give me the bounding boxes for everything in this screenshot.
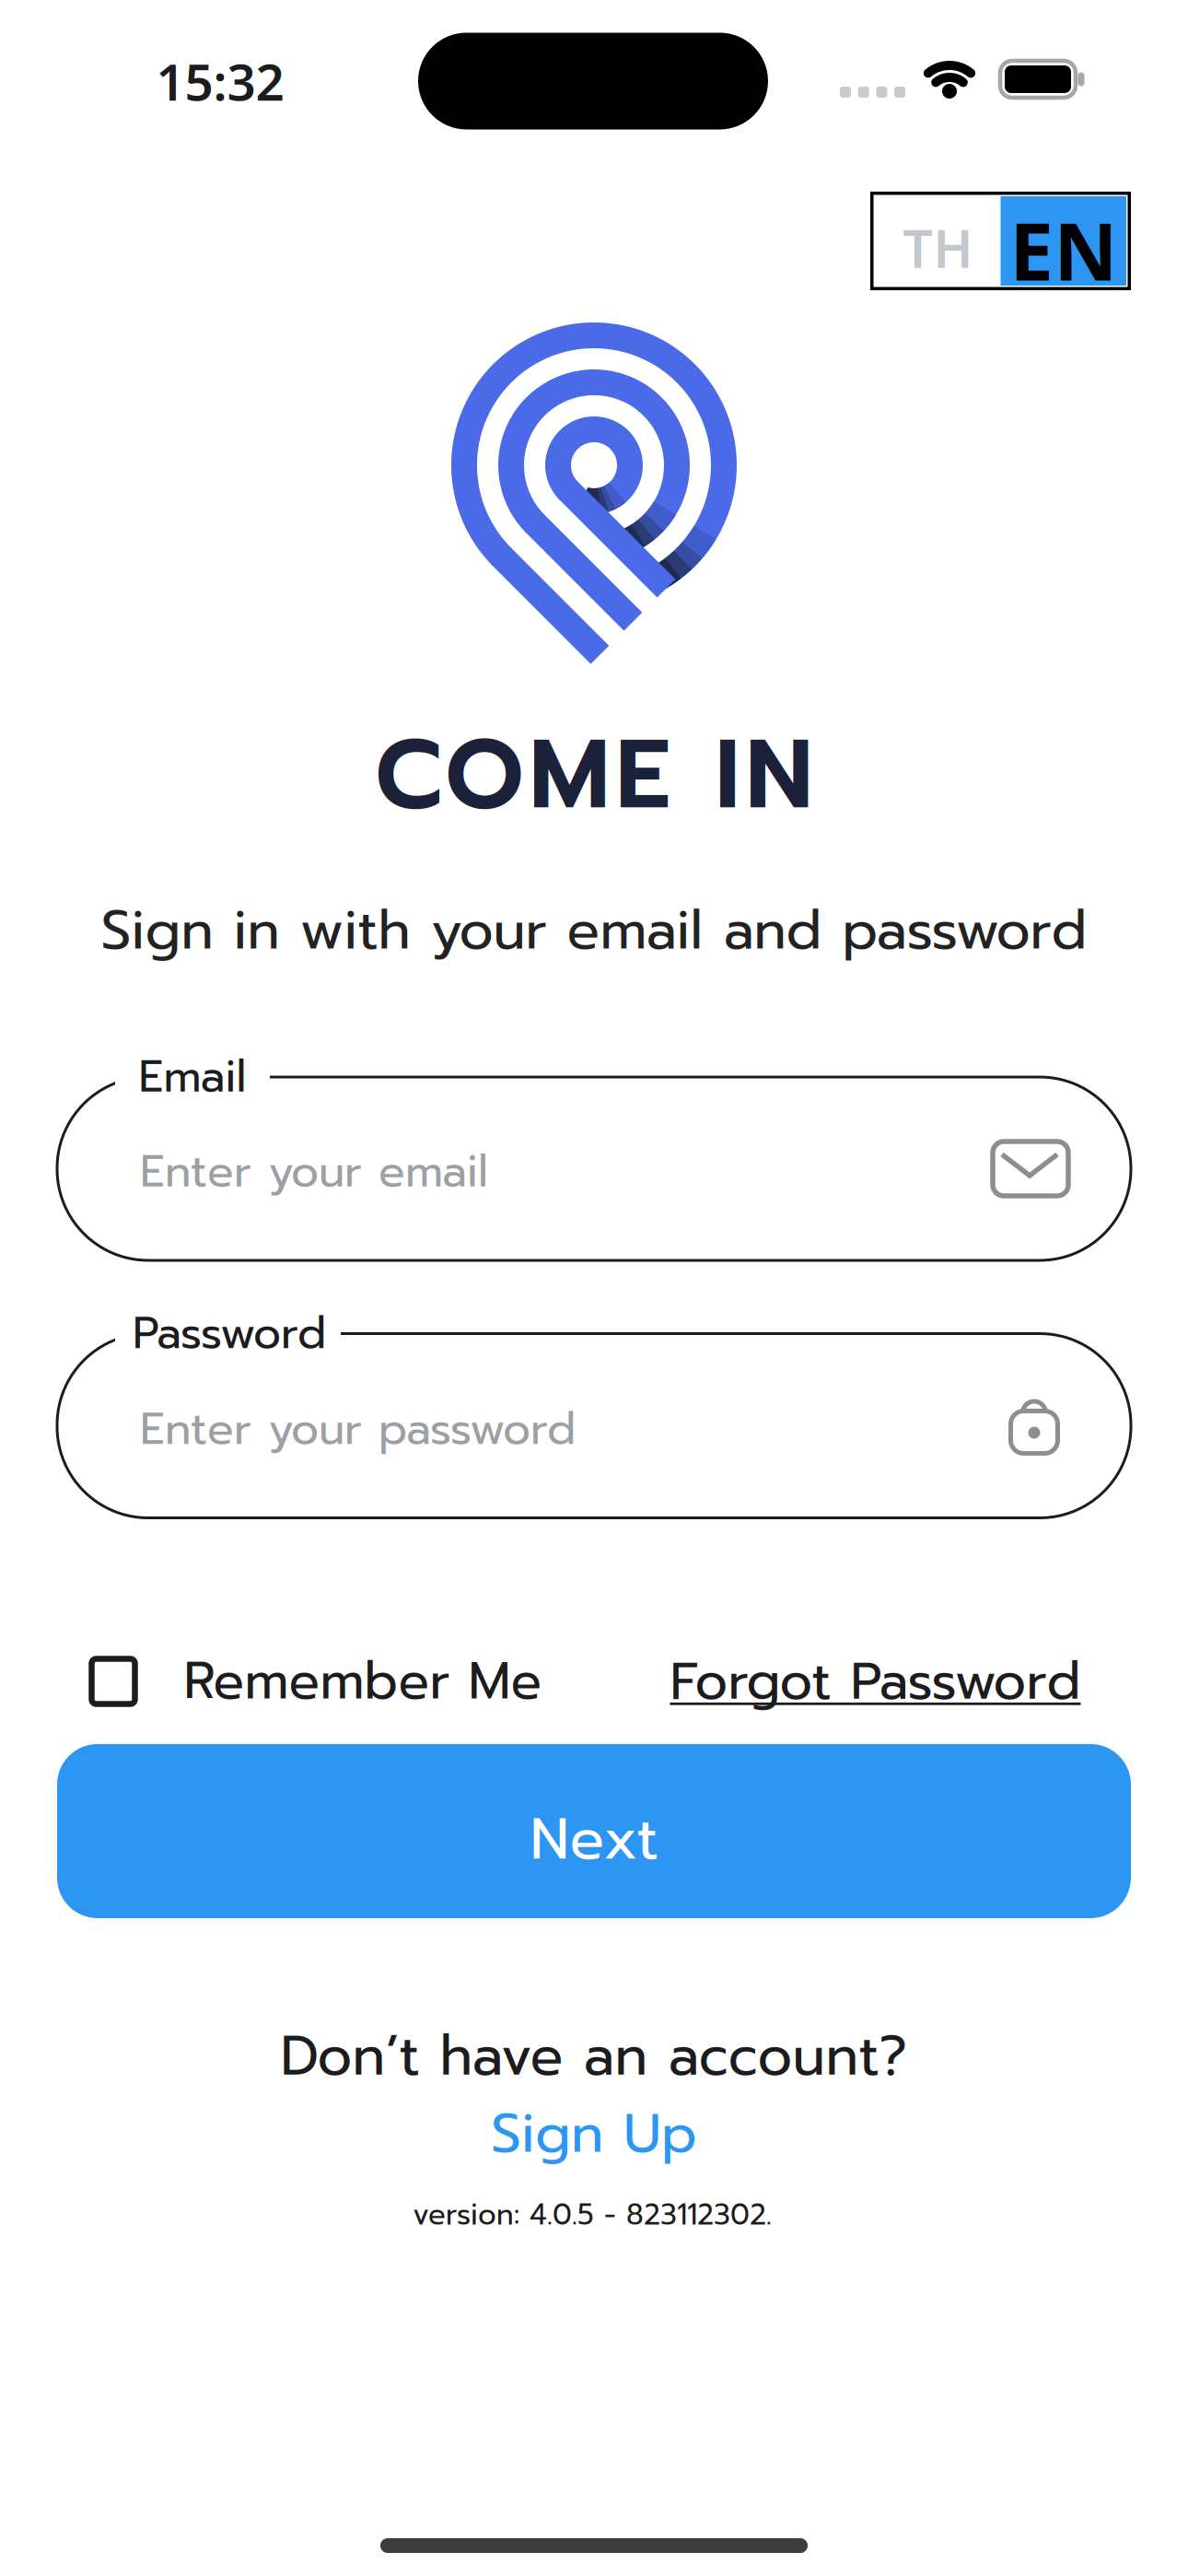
staticText: Forgot Password (670, 1642, 1081, 1720)
staticText: TH (903, 212, 973, 282)
staticText: Enter your password (140, 1396, 576, 1462)
button[interactable]: Sign Up (491, 2093, 697, 2175)
staticText: Sign Up (491, 2093, 697, 2175)
staticText: Password (133, 1301, 326, 1367)
button[interactable]: Email (57, 1077, 1131, 1260)
staticText: Enter your email (140, 1139, 488, 1205)
staticText: Email (139, 1044, 246, 1110)
staticText: 15:32 (156, 48, 284, 115)
staticText: version: 4.0.5 - 823112302. (413, 2193, 772, 2236)
staticText: EN (1010, 198, 1117, 302)
staticText: COME IN (375, 701, 813, 848)
button[interactable]: EN (1001, 196, 1126, 286)
button[interactable]: Remember Me (92, 1643, 542, 1720)
button[interactable]: Next (57, 1744, 1131, 1918)
staticText: Sign in with your email and password (101, 890, 1087, 971)
staticText: Remember Me (184, 1643, 542, 1720)
button[interactable]: Forgot Password (670, 1642, 1081, 1720)
button[interactable]: Password (57, 1334, 1131, 1518)
staticText: Don’t have an account? (280, 2015, 908, 2098)
button[interactable]: TH (875, 196, 1001, 286)
staticText: Next (530, 1796, 658, 1883)
